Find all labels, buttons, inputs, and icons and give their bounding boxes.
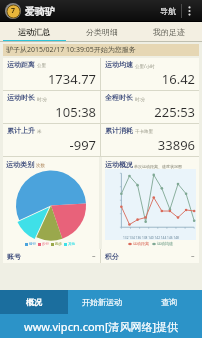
staticText: 累计消耗	[105, 126, 133, 135]
button[interactable]: 概况	[0, 290, 68, 314]
button[interactable]: 驴子从2015/02/17 10:39:05开始为您服务	[3, 44, 199, 56]
staticText: 时:分	[37, 96, 48, 102]
staticText: 33896	[105, 136, 195, 154]
button[interactable]: 我的足迹	[135, 22, 202, 42]
staticText: 公里/小时	[135, 63, 155, 69]
button[interactable]: 运动概况	[102, 157, 199, 249]
staticText: 16.42	[105, 70, 195, 88]
button[interactable]: 累计上升	[3, 124, 100, 156]
staticText: 我的足迹	[153, 27, 185, 37]
staticText: 运动均速	[157, 241, 173, 246]
button[interactable]: 运动距离	[3, 58, 100, 90]
button[interactable]: 查询	[135, 290, 202, 314]
button[interactable]: 全程时长	[101, 91, 199, 123]
staticText: 账号	[7, 252, 21, 261]
staticText: 运动距离	[133, 241, 149, 246]
staticText: 导航	[160, 6, 176, 16]
staticText: 1734.77	[7, 70, 96, 88]
staticText: 跑步	[55, 242, 62, 246]
staticText: 运动时长	[7, 93, 35, 102]
staticText: www.vipcn.com[清风网络]提供	[24, 319, 179, 334]
staticText: 累计上升	[7, 126, 35, 135]
button[interactable]: 运动时长	[3, 91, 100, 123]
staticText: 132 134 136 138 140 142 144 146 148	[123, 236, 179, 240]
button[interactable]: 分类明细	[68, 22, 135, 42]
staticText: 其他	[68, 242, 75, 246]
staticText: 225:53	[105, 103, 195, 121]
staticText: 开始新运动	[82, 297, 122, 307]
staticText: 时:分	[135, 96, 146, 102]
staticText: 骑行	[29, 242, 36, 246]
staticText: 步行	[42, 242, 49, 246]
staticText: –	[191, 251, 195, 261]
button[interactable]: 账号	[3, 249, 100, 263]
staticText: 运动距离	[7, 60, 35, 69]
button[interactable]: 运动汇总	[0, 22, 68, 42]
staticText: -997	[7, 136, 96, 154]
staticText: 千卡路里	[135, 129, 153, 135]
staticText: 概况	[26, 297, 42, 307]
staticText: 次数	[36, 163, 45, 169]
staticText: 7	[11, 6, 16, 16]
staticText: 单次运动距离、速度状况图	[134, 164, 182, 169]
staticText: 查询	[161, 297, 177, 307]
staticText: 驴子从2015/02/17 10:39:05开始为您服务	[6, 45, 136, 55]
staticText: –	[92, 251, 96, 261]
button[interactable]: 运动均速	[101, 58, 199, 90]
button[interactable]: 开始新运动	[68, 290, 135, 314]
staticText: 105:38	[7, 103, 96, 121]
staticText: 爱骑驴	[25, 5, 55, 18]
staticText: 积分	[105, 252, 119, 261]
staticText: 运动概况	[105, 160, 133, 169]
staticText: 公里	[37, 63, 46, 69]
button[interactable]: 运动类别	[3, 157, 99, 249]
staticText: 运动类别	[6, 160, 34, 169]
staticText: 米	[37, 129, 42, 135]
staticText: 分类明细	[86, 27, 118, 37]
button[interactable]: 积分	[101, 249, 199, 263]
button[interactable]: 累计消耗	[101, 124, 199, 156]
button[interactable]: More options	[182, 2, 197, 20]
staticText: 全程时长	[105, 93, 133, 102]
button[interactable]: 导航	[155, 3, 181, 19]
staticText: 运动均速	[105, 60, 133, 69]
staticText: 运动汇总	[18, 27, 50, 37]
